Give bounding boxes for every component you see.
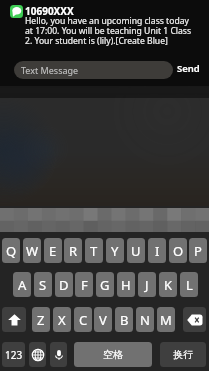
- button[interactable]: S: [34, 272, 52, 297]
- button[interactable]: C: [74, 307, 92, 332]
- staticText: A: [18, 276, 27, 294]
- button[interactable]: H: [117, 272, 135, 297]
- staticText: R: [69, 242, 78, 260]
- button[interactable]: Dictation: [50, 342, 67, 367]
- staticText: J: [145, 276, 149, 294]
- button[interactable]: T: [85, 238, 103, 263]
- button[interactable]: O: [169, 238, 187, 263]
- staticText: O: [173, 242, 184, 260]
- staticText: Hello, you have an upcoming class today …: [25, 15, 197, 46]
- button[interactable]: L: [180, 272, 198, 297]
- staticText: B: [120, 311, 129, 329]
- button[interactable]: K: [159, 272, 177, 297]
- button[interactable]: Send: [177, 62, 200, 75]
- button[interactable]: V: [94, 307, 112, 332]
- button[interactable]: B: [115, 307, 133, 332]
- staticText: Send: [177, 62, 200, 75]
- button[interactable]: J: [138, 272, 156, 297]
- button[interactable]: G: [96, 272, 114, 297]
- staticText: G: [100, 276, 110, 294]
- staticText: W: [26, 242, 39, 260]
- staticText: F: [81, 276, 88, 294]
- staticText: 10690XXX: [25, 4, 74, 18]
- staticText: Text Message: [21, 64, 79, 76]
- button[interactable]: Q: [2, 238, 20, 263]
- button[interactable]: Z: [32, 307, 50, 332]
- button[interactable]: E: [44, 238, 62, 263]
- staticText: S: [39, 276, 47, 294]
- staticText: K: [164, 276, 173, 294]
- button[interactable]: U: [127, 238, 145, 263]
- button[interactable]: P: [189, 238, 207, 263]
- staticText: 空格: [103, 348, 123, 361]
- staticText: D: [59, 276, 69, 294]
- button[interactable]: 123: [2, 342, 25, 367]
- button[interactable]: X: [53, 307, 71, 332]
- button[interactable]: 空格: [74, 342, 152, 367]
- staticText: U: [131, 242, 141, 260]
- staticText: Q: [6, 242, 17, 260]
- staticText: L: [186, 276, 193, 294]
- staticText: Y: [111, 242, 119, 260]
- button[interactable]: I: [148, 238, 166, 263]
- staticText: Z: [37, 311, 45, 329]
- button[interactable]: W: [23, 238, 41, 263]
- staticText: C: [79, 311, 88, 329]
- button[interactable]: Backspace: [183, 307, 206, 332]
- button[interactable]: N: [136, 307, 154, 332]
- button[interactable]: F: [75, 272, 93, 297]
- staticText: E: [49, 242, 57, 260]
- button[interactable]: R: [64, 238, 82, 263]
- button[interactable]: Text Message: [14, 61, 173, 79]
- button[interactable]: D: [55, 272, 73, 297]
- button[interactable]: 10690XXX: [0, 0, 209, 86]
- staticText: T: [90, 242, 98, 260]
- staticText: 123: [5, 348, 23, 362]
- button[interactable]: Change keyboard: [29, 342, 46, 367]
- button[interactable]: 换行: [160, 342, 206, 367]
- staticText: M: [160, 311, 172, 329]
- staticText: P: [194, 242, 202, 260]
- staticText: V: [99, 311, 107, 329]
- staticText: 换行: [173, 348, 193, 361]
- staticText: X: [58, 311, 66, 329]
- staticText: I: [155, 242, 160, 260]
- staticText: H: [121, 276, 131, 294]
- button[interactable]: Y: [106, 238, 124, 263]
- staticText: N: [140, 311, 150, 329]
- button[interactable]: Shift: [2, 307, 26, 332]
- button[interactable]: M: [157, 307, 175, 332]
- button[interactable]: A: [13, 272, 31, 297]
